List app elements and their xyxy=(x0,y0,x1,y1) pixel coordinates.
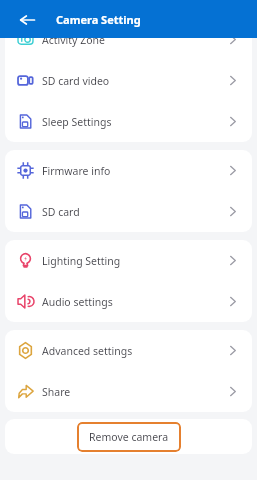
staticText: Share xyxy=(42,385,71,399)
button[interactable]: Activity Zone xyxy=(5,19,252,60)
staticText: Camera Setting xyxy=(56,12,141,27)
button[interactable]: Back xyxy=(0,0,54,38)
button[interactable]: Audio settings xyxy=(5,281,252,322)
button[interactable]: Lighting Setting xyxy=(5,240,252,281)
button[interactable]: Firmware info xyxy=(5,150,252,191)
staticText: Audio settings xyxy=(42,295,113,309)
button[interactable]: Remove camera xyxy=(77,422,181,452)
staticText: Firmware info xyxy=(42,164,111,178)
button[interactable]: Share xyxy=(5,371,252,412)
button[interactable]: Sleep Settings xyxy=(5,101,252,142)
staticText: Lighting Setting xyxy=(42,254,121,268)
button[interactable]: Advanced settings xyxy=(5,330,252,371)
staticText: Sleep Settings xyxy=(42,115,112,129)
staticText: SD card xyxy=(42,205,80,219)
button[interactable]: SD card xyxy=(5,191,252,232)
button[interactable]: SD card video xyxy=(5,60,252,101)
staticText: Advanced settings xyxy=(42,344,133,358)
staticText: Activity Zone xyxy=(42,33,105,47)
staticText: SD card video xyxy=(42,74,110,88)
staticText: Remove camera xyxy=(89,430,169,444)
